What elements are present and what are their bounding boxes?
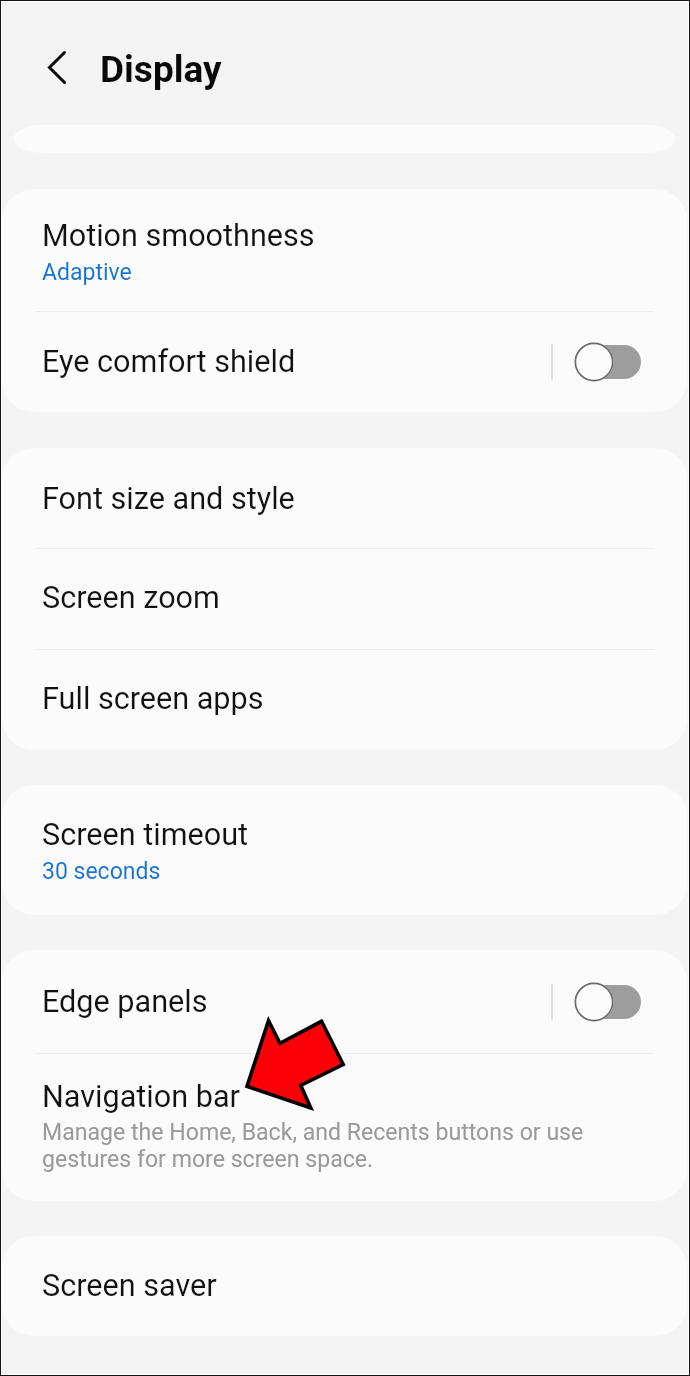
button[interactable]: Screen timeout, 30 seconds [2,785,687,915]
button[interactable]: Edge panels [2,950,522,1053]
button[interactable]: Screen zoom [2,548,687,649]
staticText: Display [100,48,222,91]
staticText: Screen timeout [42,817,249,853]
button[interactable]: Full screen apps [2,649,687,750]
button[interactable]: Font size and style [2,448,687,548]
button[interactable]: Eye comfort shield [2,311,522,412]
button[interactable]: Eye comfort shield switch, off [551,338,641,386]
staticText: Screen zoom [42,580,220,616]
staticText: Navigation bar [42,1079,240,1115]
staticText: Full screen apps [42,681,264,717]
staticText: Adaptive [42,259,132,286]
staticText: 30 seconds [42,858,161,885]
staticText: Edge panels [42,984,208,1020]
staticText: Font size and style [42,481,295,517]
staticText: Screen saver [42,1268,217,1304]
button[interactable]: Edge panels switch, off [551,978,641,1026]
button[interactable]: Navigate up [24,44,72,92]
button[interactable]: Screen saver [2,1236,687,1336]
button[interactable]: Motion smoothness, Adaptive [2,189,687,311]
button[interactable]: Navigation bar [2,1053,687,1201]
staticText: Manage the Home, Back, and Recents butto… [42,1119,607,1172]
staticText: Motion smoothness [42,218,315,254]
staticText: Eye comfort shield [42,344,296,380]
